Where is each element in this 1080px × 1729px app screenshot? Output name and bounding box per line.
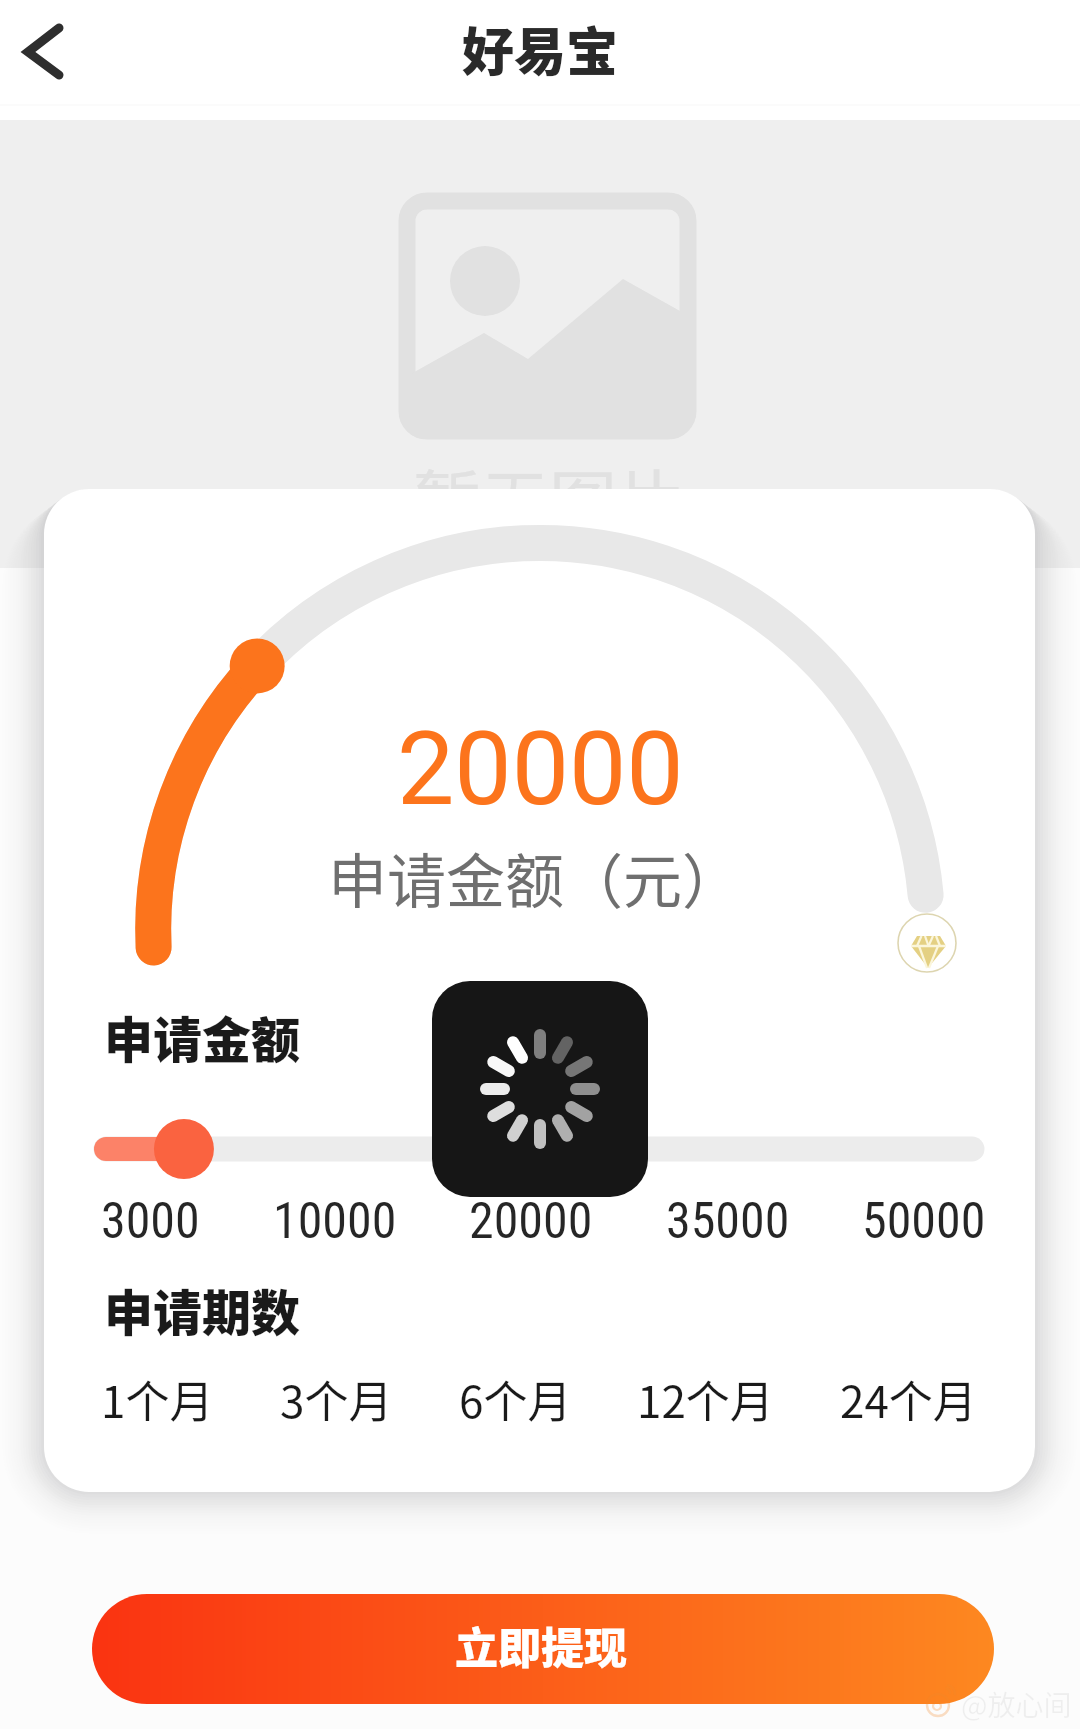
button[interactable]: Loan amount slider <box>64 1109 1024 1209</box>
staticText: 1个月 <box>101 1367 214 1431</box>
button[interactable]: Back <box>0 0 110 120</box>
staticText: 20000 <box>469 1192 593 1251</box>
button[interactable]: 1个月 <box>101 1367 214 1431</box>
staticText: 好易宝 <box>462 11 619 86</box>
staticText: 6个月 <box>459 1367 572 1431</box>
staticText: 35000 <box>666 1192 790 1251</box>
staticText: 12个月 <box>637 1367 774 1431</box>
button[interactable]: 24个月 <box>840 1367 977 1431</box>
staticText: 10000 <box>273 1192 397 1251</box>
staticText: 3000 <box>101 1192 200 1251</box>
staticText: 立即提现 <box>455 1614 627 1676</box>
staticText: 20000 <box>397 709 684 829</box>
staticText: 申请期数 <box>104 1274 301 1345</box>
button[interactable]: 6个月 <box>459 1367 572 1431</box>
button[interactable]: 3个月 <box>280 1367 393 1431</box>
staticText: 申请金额 <box>104 1001 301 1072</box>
staticText: @放心间 <box>961 1684 1072 1725</box>
button[interactable]: 立即提现 <box>92 1594 994 1704</box>
staticText: 3个月 <box>280 1367 393 1431</box>
staticText: 申请金额（元） <box>328 835 742 920</box>
staticText: 暂无图片 <box>413 448 686 546</box>
staticText: 24个月 <box>840 1367 977 1431</box>
button[interactable]: 12个月 <box>637 1367 774 1431</box>
staticText: 50000 <box>862 1192 986 1251</box>
